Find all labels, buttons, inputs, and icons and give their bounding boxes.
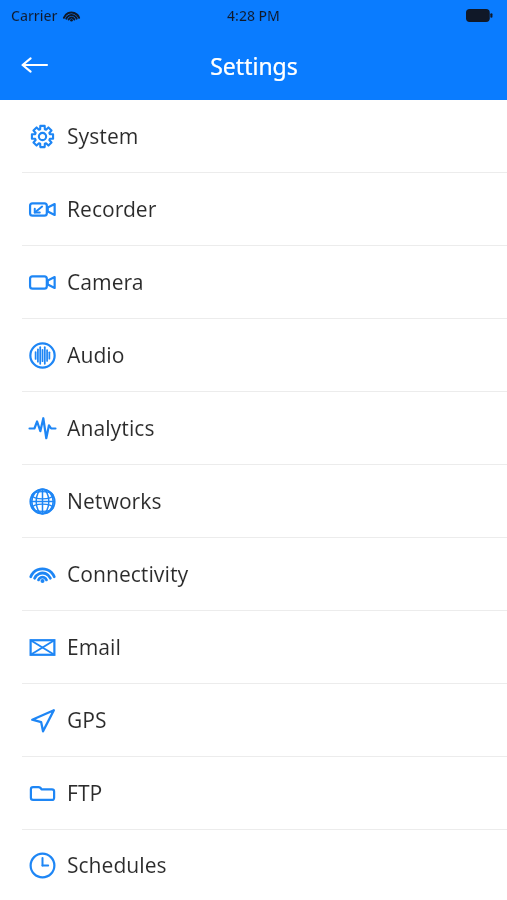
button[interactable]: Recorder [0, 173, 507, 245]
staticText: GPS [67, 706, 107, 735]
button[interactable]: Camera [0, 246, 507, 318]
staticText: 4:28 PM [227, 6, 280, 25]
button[interactable]: Back [12, 43, 56, 87]
button[interactable]: Email [0, 611, 507, 683]
staticText: System [67, 122, 139, 151]
button[interactable]: FTP [0, 757, 507, 829]
staticText: Schedules [67, 851, 167, 880]
staticText: Settings [210, 50, 298, 81]
staticText: Email [67, 633, 121, 662]
button[interactable]: GPS [0, 684, 507, 756]
staticText: Networks [67, 487, 162, 516]
staticText: Audio [67, 341, 125, 370]
button[interactable]: Networks [0, 465, 507, 537]
button[interactable]: Audio [0, 319, 507, 391]
staticText: Analytics [67, 414, 155, 443]
button[interactable]: Schedules [0, 830, 507, 900]
button[interactable]: Analytics [0, 392, 507, 464]
button[interactable]: Connectivity [0, 538, 507, 610]
staticText: FTP [67, 779, 103, 808]
staticText: Connectivity [67, 560, 189, 589]
staticText: Carrier [11, 6, 58, 25]
button[interactable]: System [0, 100, 507, 172]
staticText: Camera [67, 268, 144, 297]
staticText: Recorder [67, 195, 157, 224]
